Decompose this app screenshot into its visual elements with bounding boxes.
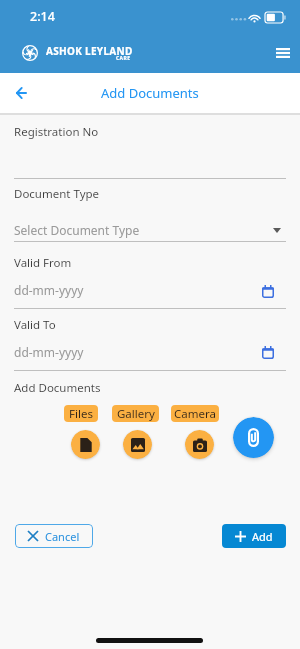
- button[interactable]: Back: [9, 81, 33, 105]
- staticText: 2:14: [30, 8, 55, 25]
- staticText: Valid From: [14, 255, 72, 271]
- button[interactable]: Pick date: [258, 282, 277, 301]
- button[interactable]: Files: [64, 405, 98, 422]
- staticText: Document Type: [14, 186, 100, 202]
- button[interactable]: Files: [71, 430, 100, 459]
- staticText: Gallery: [117, 406, 155, 422]
- button[interactable]: Open dropdown: [268, 221, 286, 239]
- staticText: Files: [69, 406, 93, 422]
- staticText: Camera: [174, 406, 216, 422]
- staticText: Registration No: [14, 124, 99, 140]
- button[interactable]: Pick date: [258, 343, 277, 362]
- staticText: Valid To: [14, 317, 56, 333]
- button[interactable]: Camera: [185, 430, 214, 459]
- staticText: Select Document Type: [14, 222, 140, 238]
- button[interactable]: Attach file: [233, 417, 274, 458]
- staticText: Add: [252, 529, 273, 544]
- button[interactable]: Add: [222, 524, 286, 548]
- button[interactable]: Gallery: [112, 405, 159, 422]
- staticText: Cancel: [45, 529, 80, 544]
- staticText: CARE: [116, 55, 131, 62]
- staticText: ASHOK LEYLAND: [46, 44, 133, 58]
- button[interactable]: Cancel: [15, 524, 93, 548]
- button[interactable]: Gallery: [123, 430, 152, 459]
- staticText: Add Documents: [14, 380, 101, 396]
- staticText: dd-mm-yyyy: [14, 282, 84, 298]
- button[interactable]: Menu: [267, 37, 299, 69]
- staticText: dd-mm-yyyy: [14, 344, 84, 360]
- button[interactable]: Camera: [171, 405, 219, 422]
- staticText: Add Documents: [101, 84, 199, 102]
